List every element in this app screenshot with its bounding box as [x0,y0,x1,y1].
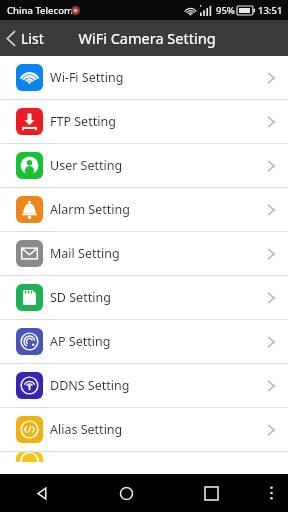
staticText: Alarm Setting [50,201,130,218]
button[interactable]: User Setting [0,144,288,188]
button[interactable]: More options [254,474,288,512]
button[interactable]: List [0,20,54,56]
staticText: SD Setting [50,289,111,306]
other: Open User Setting [266,158,276,174]
button[interactable]: Wi-Fi Setting [0,56,288,100]
staticText: Wi-Fi Setting [50,69,124,86]
staticText: 13:51 [258,4,283,17]
staticText: List [21,29,44,48]
other: Open Alias Setting [266,422,276,438]
staticText: WiFi Camera Setting [78,28,216,48]
staticText: DDNS Setting [50,377,130,394]
button[interactable]: Alarm Setting [0,188,288,232]
other: Open DDNS Setting [266,378,276,394]
staticText: AP Setting [50,333,111,350]
button[interactable]: SD Setting [0,276,288,320]
button[interactable]: Alias Setting [0,408,288,452]
button[interactable]: Recents [169,474,254,512]
staticText: Alias Setting [50,421,123,438]
staticText: FTP Setting [50,113,116,130]
other: Open FTP Setting [266,114,276,130]
other: Open Alarm Setting [266,202,276,218]
button[interactable]: Mail Setting [0,232,288,276]
other: Open Wi-Fi Setting [266,70,276,86]
staticText: 95% [216,4,235,17]
button[interactable]: DDNS Setting [0,364,288,408]
other: Open Mail Setting [266,246,276,262]
button[interactable]: Back [0,474,84,512]
staticText: Mail Setting [50,245,120,262]
button[interactable]: FTP Setting [0,100,288,144]
other: Open AP Setting [266,334,276,350]
staticText: China Telecom [7,4,74,17]
button[interactable]: Home [84,474,169,512]
other: Open SD Setting [266,290,276,306]
button[interactable]: AP Setting [0,320,288,364]
staticText: User Setting [50,157,123,174]
